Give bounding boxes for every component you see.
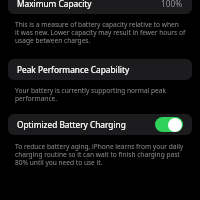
staticText: Optimized Battery Charging <box>17 119 126 130</box>
button[interactable]: Optimized Battery Charging toggle <box>155 117 183 132</box>
button[interactable]: Peak Performance Capability <box>8 59 192 80</box>
staticText: This is a measure of battery capacity re… <box>15 20 195 45</box>
staticText: To reduce battery aging, iPhone learns f… <box>15 142 195 167</box>
staticText: Maximum Capacity <box>17 0 92 9</box>
staticText: Your battery is currently supporting nor… <box>15 86 195 103</box>
staticText: 100% <box>161 0 183 9</box>
staticText: Peak Performance Capability <box>17 64 130 75</box>
button[interactable]: Maximum Capacity <box>8 0 192 14</box>
button[interactable]: Optimized Battery Charging <box>8 114 192 135</box>
